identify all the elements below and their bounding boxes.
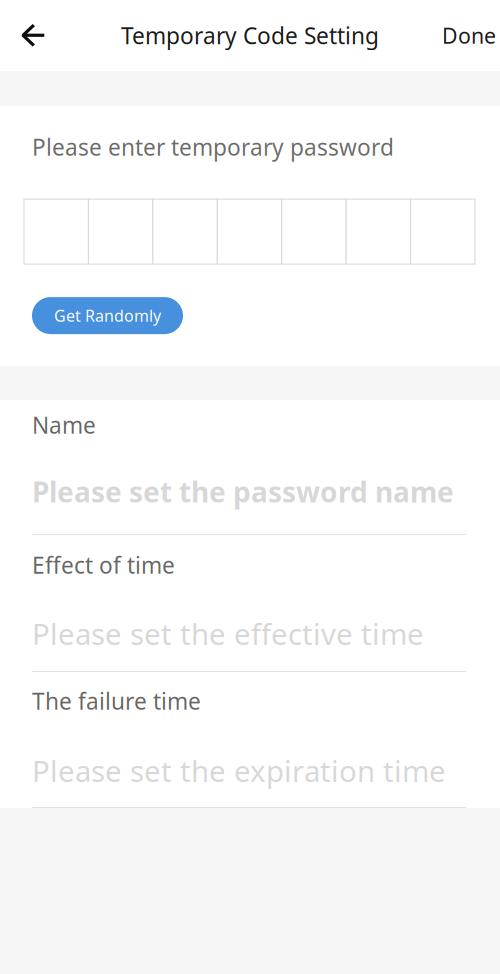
staticText: Please set the effective time xyxy=(32,614,424,653)
button[interactable]: The failure time xyxy=(0,672,500,808)
staticText: Please set the password name xyxy=(32,473,454,510)
staticText: Please enter temporary password xyxy=(32,132,394,162)
button[interactable]: Name xyxy=(0,400,500,535)
staticText: Effect of time xyxy=(32,550,175,580)
staticText: Get Randomly xyxy=(54,305,161,326)
button[interactable]: Effect of time xyxy=(0,535,500,672)
button[interactable]: Get Randomly xyxy=(32,297,183,334)
staticText: Done xyxy=(442,21,496,50)
button[interactable]: Done xyxy=(426,7,500,64)
button[interactable]: Back xyxy=(0,10,61,61)
staticText: Name xyxy=(32,410,96,440)
button[interactable]: Temporary password digits xyxy=(24,199,475,264)
staticText: Temporary Code Setting xyxy=(121,20,379,50)
staticText: The failure time xyxy=(32,686,201,716)
staticText: Please set the expiration time xyxy=(32,751,446,790)
